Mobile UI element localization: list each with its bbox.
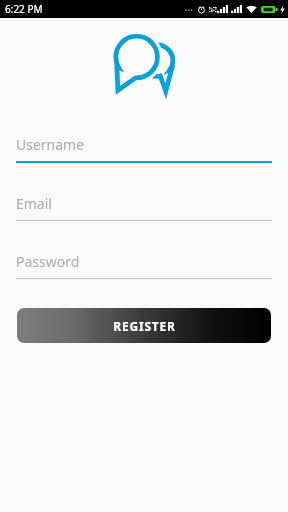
staticText: Username — [16, 135, 85, 154]
button[interactable]: Email — [16, 194, 272, 221]
staticText: 6:22 PM — [5, 2, 43, 16]
button[interactable]: REGISTER — [17, 308, 271, 343]
staticText: Email — [16, 194, 52, 213]
button[interactable]: Username — [16, 135, 272, 163]
staticText: Password — [16, 252, 80, 271]
staticText: REGISTER — [113, 318, 176, 334]
other: Chat bubbles logo — [113, 32, 176, 93]
button[interactable]: Password — [16, 252, 272, 279]
